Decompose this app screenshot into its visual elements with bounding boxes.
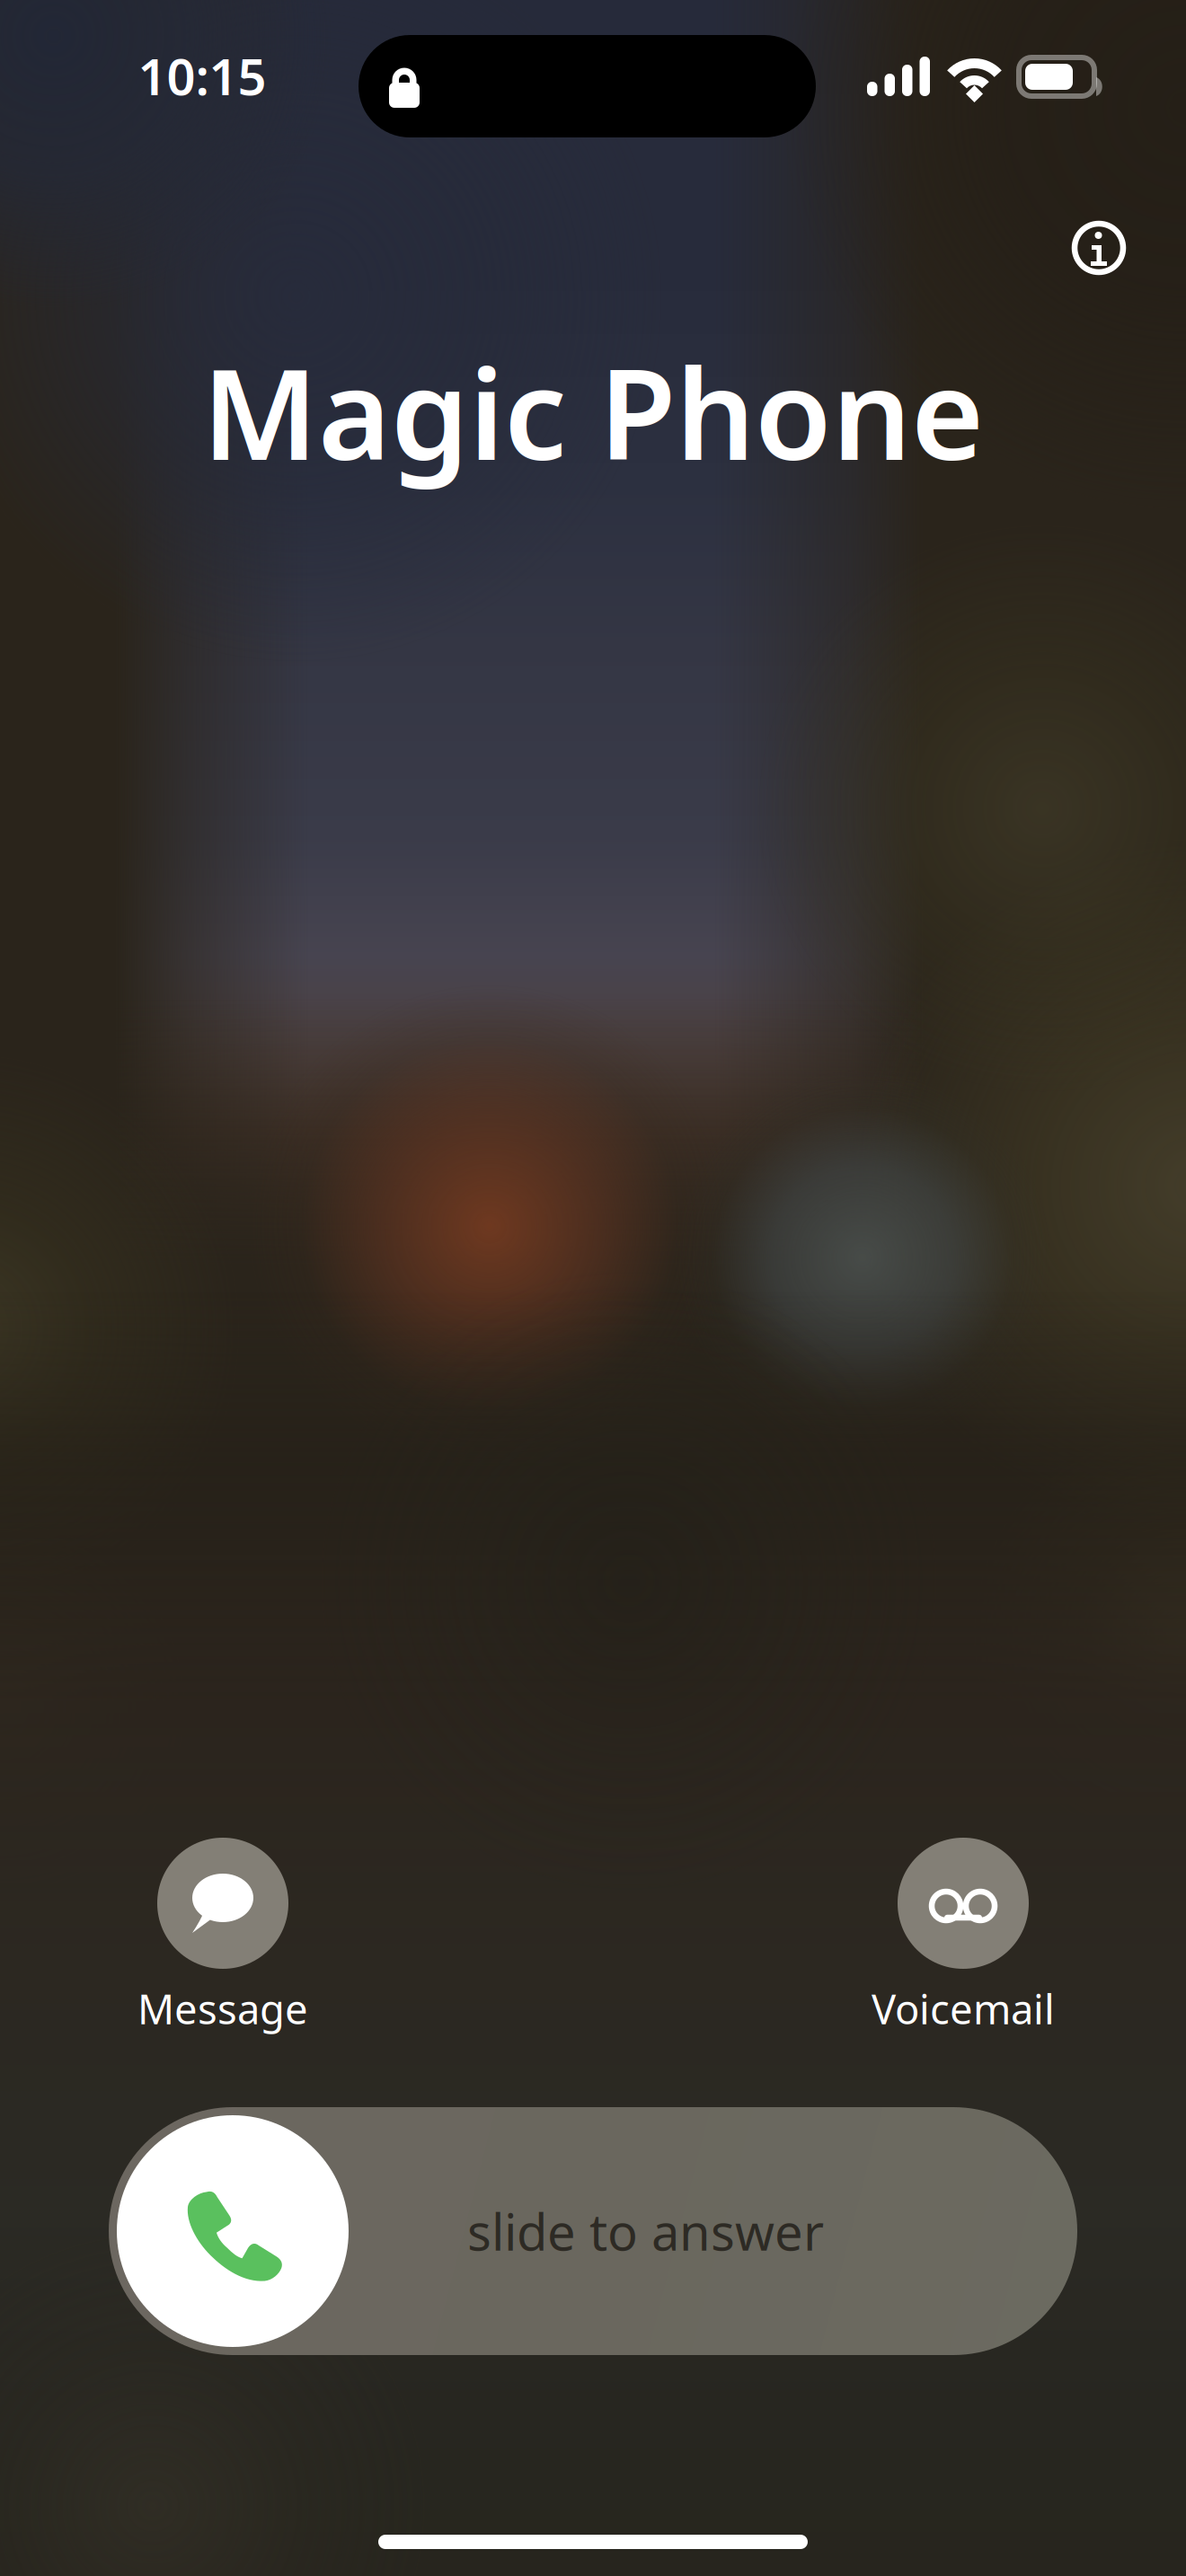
staticText: Message — [137, 1981, 308, 2035]
button[interactable]: Message — [88, 1838, 358, 2035]
button[interactable]: Call information — [1052, 201, 1146, 295]
staticText: 10:15 — [138, 42, 266, 109]
staticText: Magic Phone — [202, 329, 984, 494]
button[interactable]: Voicemail — [828, 1838, 1098, 2035]
staticText: slide to answer — [467, 2198, 824, 2265]
staticText: Voicemail — [872, 1981, 1055, 2035]
button[interactable]: slide to answer — [109, 2107, 1077, 2355]
